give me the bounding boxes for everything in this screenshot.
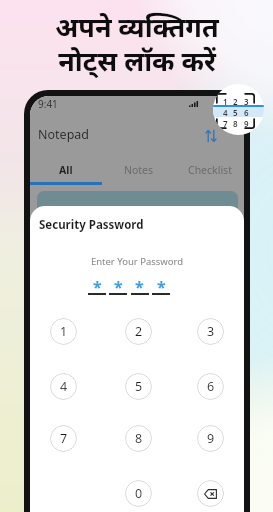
staticText: Enter Your Password bbox=[30, 255, 244, 268]
button[interactable]: Notes bbox=[104, 159, 174, 181]
staticText: Notepad bbox=[38, 126, 90, 143]
staticText: 4 bbox=[223, 107, 228, 117]
button[interactable]: 1 bbox=[50, 318, 77, 345]
staticText: 9:41 bbox=[38, 97, 58, 111]
staticText: 9 bbox=[207, 430, 215, 447]
staticText: 7 bbox=[60, 430, 68, 447]
button[interactable]: Backspace bbox=[197, 480, 224, 507]
staticText: 6 bbox=[207, 378, 215, 395]
staticText: 5 bbox=[135, 378, 143, 395]
button[interactable]: 0 bbox=[125, 480, 152, 507]
staticText: 1 bbox=[223, 96, 228, 106]
staticText: Security Password bbox=[39, 217, 144, 233]
staticText: * bbox=[114, 276, 123, 298]
staticText: Checklist bbox=[188, 163, 232, 177]
button[interactable]: 5 bbox=[125, 373, 152, 400]
staticText: 3 bbox=[207, 323, 215, 340]
staticText: अपने व्यक्तिगत bbox=[55, 8, 219, 45]
staticText: 1 bbox=[60, 323, 68, 340]
button[interactable]: 3 bbox=[197, 318, 224, 345]
staticText: नोट्स लॉक करें bbox=[58, 42, 216, 79]
button[interactable]: Checklist bbox=[175, 159, 244, 181]
staticText: All bbox=[59, 163, 73, 177]
staticText: 5 bbox=[233, 107, 238, 117]
staticText: 8 bbox=[135, 430, 143, 447]
button[interactable]: Keypad lock bbox=[213, 84, 264, 135]
staticText: 2 bbox=[233, 96, 238, 106]
staticText: 7 bbox=[223, 118, 228, 128]
button[interactable]: 4 bbox=[50, 373, 77, 400]
button[interactable]: Sort bbox=[204, 129, 218, 143]
button[interactable]: 6 bbox=[197, 373, 224, 400]
staticText: 3 bbox=[244, 96, 249, 106]
staticText: 2 bbox=[135, 323, 143, 340]
staticText: 6 bbox=[244, 107, 249, 117]
staticText: 9 bbox=[244, 118, 249, 128]
button[interactable]: 9 bbox=[197, 425, 224, 452]
button[interactable]: All bbox=[31, 159, 101, 181]
staticText: Notes bbox=[124, 163, 154, 177]
button[interactable]: 8 bbox=[125, 425, 152, 452]
staticText: 8 bbox=[233, 118, 238, 128]
staticText: * bbox=[157, 276, 166, 298]
staticText: 0 bbox=[135, 485, 143, 502]
button[interactable]: 2 bbox=[125, 318, 152, 345]
staticText: 4 bbox=[60, 378, 68, 395]
staticText: * bbox=[135, 276, 144, 298]
button[interactable]: 7 bbox=[50, 425, 77, 452]
staticText: * bbox=[93, 276, 102, 298]
